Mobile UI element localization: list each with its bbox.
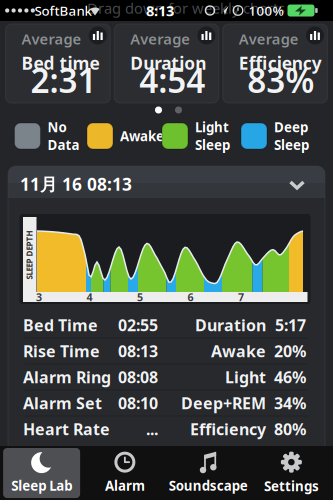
staticText: Alarm Ring [23,366,111,388]
staticText: SLEEP DEPTH [5,250,54,260]
button[interactable]: Soundscape [166,446,250,500]
staticText: 08:13 [118,340,158,362]
staticText: 34% [274,392,306,414]
staticText: Duration [195,314,266,336]
staticText: Soundscape [169,477,248,494]
staticText: Average [130,29,190,48]
staticText: Heart Rate [23,418,110,440]
button[interactable]: 11月 16 08:13 [8,167,325,201]
staticText: Duration [130,51,206,74]
staticText: Light [225,366,266,388]
staticText: Average [22,29,82,48]
staticText: 5 [137,290,143,304]
staticText: No [47,118,66,136]
staticText: 6 [187,290,193,304]
staticText: 20% [274,340,306,362]
staticText: 2:31 [31,58,97,102]
staticText: 02:55 [118,314,158,336]
staticText: 7 [238,290,244,304]
staticText: Alarm Set [23,392,102,414]
staticText: 3 [36,290,42,304]
staticText: Deep+REM [181,392,266,414]
staticText: Bed Time [23,314,98,336]
staticText: SoftBank [34,2,91,19]
staticText: Sleep Lab [11,477,72,494]
staticText: Settings [264,477,319,495]
staticText: Awake [120,127,164,145]
button[interactable]: Alarm [83,446,166,500]
staticText: 08:10 [118,392,158,414]
staticText: 08:08 [118,366,158,388]
staticText: 11月 16 08:13 [20,172,132,195]
staticText: Average [239,29,299,48]
staticText: Sleep [274,136,309,154]
staticText: Rise Time [23,340,100,362]
button[interactable]: Sleep Lab [0,446,83,500]
button[interactable]: Average [114,24,219,103]
staticText: Light [195,118,229,136]
staticText: 5:17 [275,314,306,336]
staticText: 83% [247,58,314,102]
button[interactable]: Settings [250,446,333,500]
staticText: 8:13 [146,1,174,20]
staticText: Efficiency [190,418,266,440]
staticText: Awake [211,340,266,362]
staticText: Sleep [195,136,230,154]
staticText: 100% [248,2,283,19]
staticText: Data [47,136,79,154]
staticText: ... [146,418,158,440]
staticText: 46% [274,366,306,388]
button[interactable]: Average [6,24,110,103]
staticText: Efficiency [239,51,322,74]
staticText: 4 [86,290,92,304]
staticText: Bed time [22,51,100,74]
staticText: 4:54 [139,58,205,102]
button[interactable]: Average [223,24,327,103]
staticText: 80% [274,418,306,440]
staticText: Deep [274,118,308,136]
staticText: Alarm [105,477,145,494]
staticText: Drag down for weekly charts [87,0,285,18]
